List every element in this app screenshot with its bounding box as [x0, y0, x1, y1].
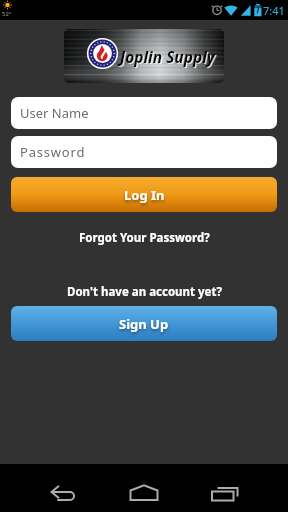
- button[interactable]: [192, 464, 288, 512]
- button[interactable]: Sign Up: [11, 306, 277, 341]
- staticText: Log In: [124, 186, 165, 204]
- button[interactable]: Don't have an account yet?: [0, 284, 288, 300]
- button[interactable]: Joplin Supply: [64, 29, 224, 83]
- staticText: Forgot Your Password?: [79, 230, 210, 246]
- button[interactable]: [96, 464, 192, 512]
- button[interactable]: Password: [11, 136, 277, 168]
- staticText: 52°: [2, 10, 12, 18]
- staticText: Joplin Supply: [120, 46, 215, 67]
- button[interactable]: Log In: [11, 177, 277, 212]
- staticText: Password: [20, 143, 86, 161]
- button[interactable]: User Name: [11, 97, 277, 129]
- button[interactable]: [0, 464, 96, 512]
- staticText: Sign Up: [119, 315, 169, 333]
- button[interactable]: Forgot Your Password?: [0, 230, 288, 246]
- staticText: Don't have an account yet?: [67, 284, 222, 300]
- staticText: 7:41: [263, 3, 285, 18]
- staticText: User Name: [20, 104, 89, 122]
